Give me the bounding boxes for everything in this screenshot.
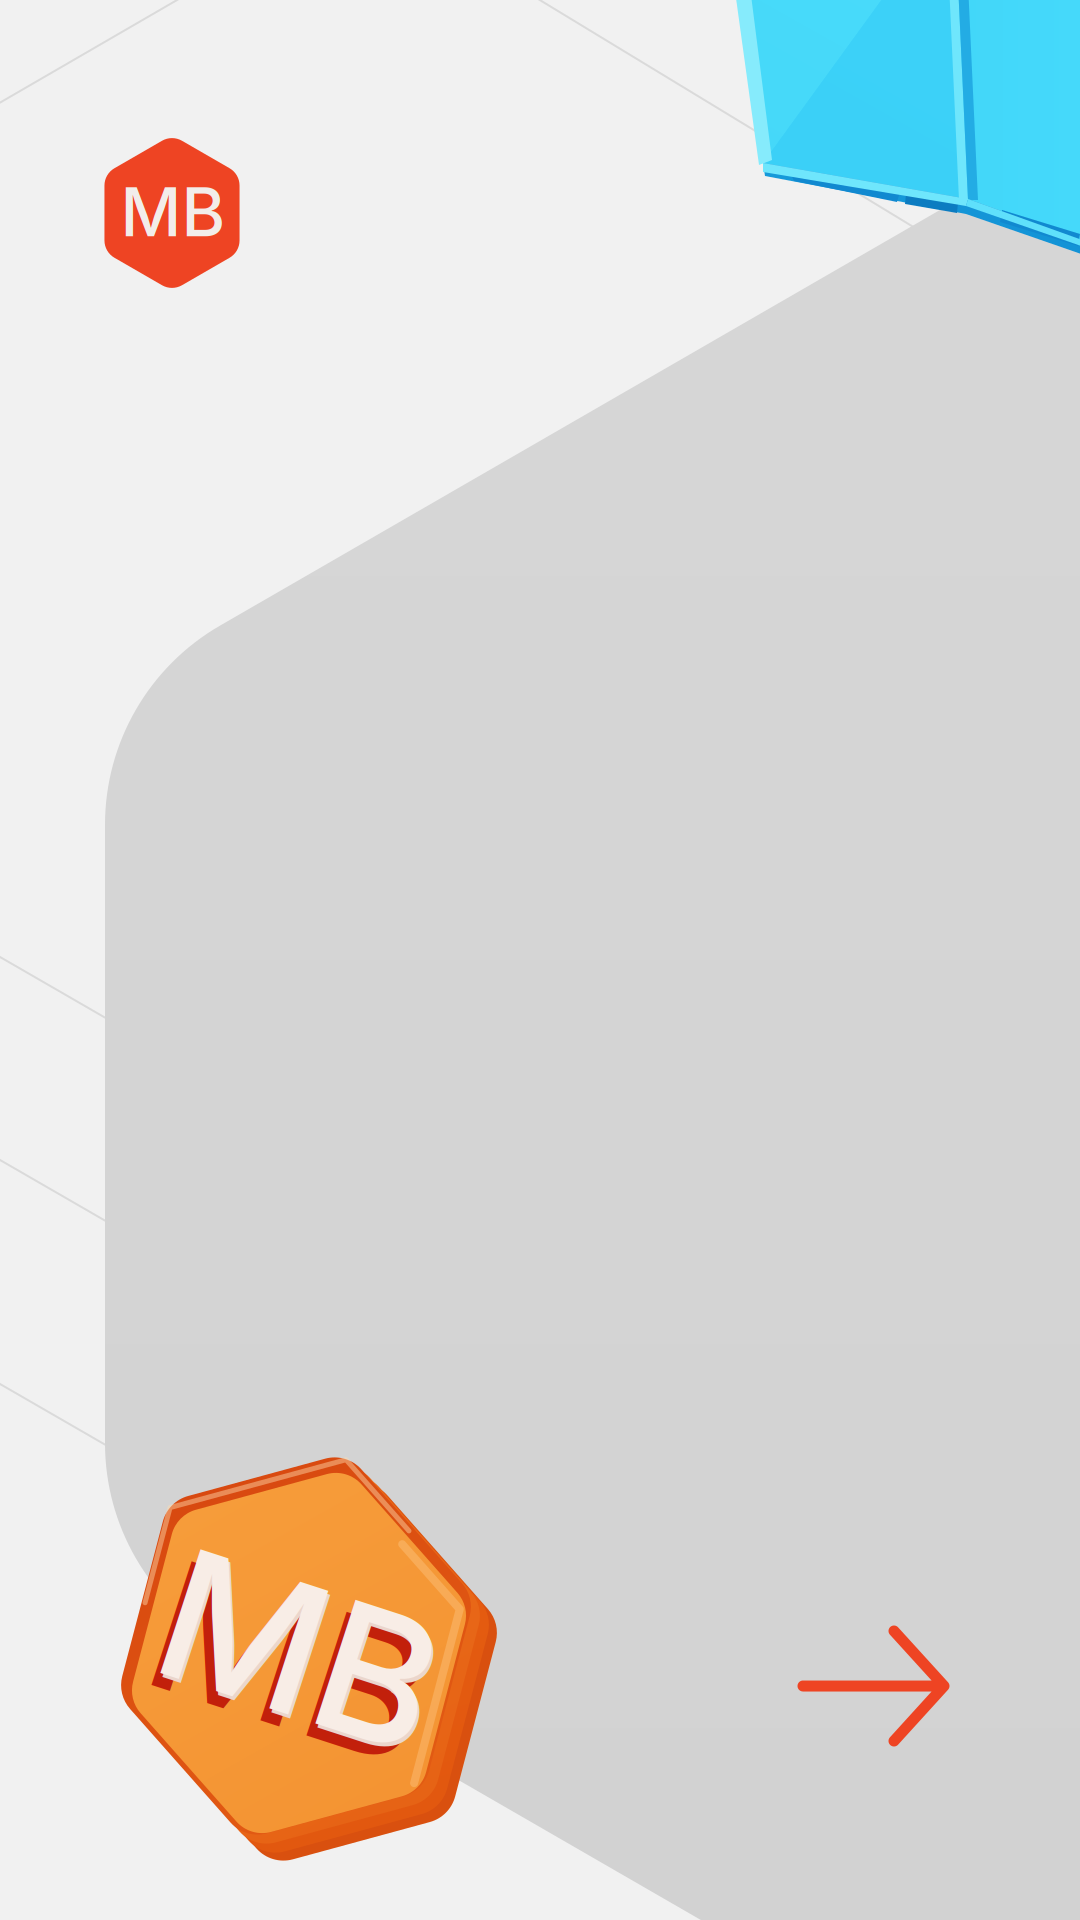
staticText: MB: [162, 1546, 442, 1762]
staticText: MB: [151, 1554, 431, 1770]
staticText: MB: [120, 172, 225, 252]
staticText: MB: [160, 1542, 440, 1758]
button[interactable]: Continue: [0, 0, 1080, 1920]
